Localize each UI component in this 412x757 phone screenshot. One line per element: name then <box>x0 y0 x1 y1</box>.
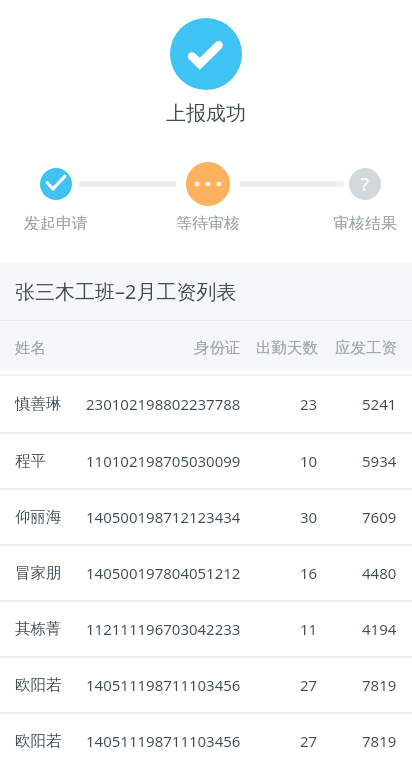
staticText: 140511198711103456 <box>86 675 241 695</box>
staticText: 欧阳若 <box>15 675 62 695</box>
staticText: 4480 <box>362 563 397 583</box>
staticText: 姓名 <box>15 338 46 358</box>
button[interactable]: 审核结果 待处理 <box>325 154 405 230</box>
staticText: 230102198802237788 <box>86 394 241 414</box>
staticText: 冒家朋 <box>15 563 62 583</box>
staticText: 27 <box>300 675 318 695</box>
staticText: 4194 <box>362 619 397 639</box>
staticText: 140511198711103456 <box>86 731 241 751</box>
staticText: 23 <box>300 394 318 414</box>
staticText: 140500197804051212 <box>86 563 241 583</box>
button[interactable]: 慎善琳 <box>0 376 412 432</box>
staticText: 上报成功 <box>166 101 246 126</box>
staticText: 140500198712123434 <box>86 507 241 527</box>
staticText: 欧阳若 <box>15 731 62 751</box>
other: 等待审核 进行中 <box>186 162 230 206</box>
staticText: 应发工资 <box>335 338 397 358</box>
staticText: 5241 <box>362 394 397 414</box>
staticText: 5934 <box>362 451 397 471</box>
staticText: 程平 <box>15 451 46 471</box>
button[interactable]: 程平 <box>0 434 412 488</box>
staticText: 慎善琳 <box>15 394 62 414</box>
button[interactable]: 等待审核 进行中 <box>168 154 248 230</box>
staticText: 7819 <box>362 731 397 751</box>
other: 发起申请 已完成 <box>40 168 72 200</box>
staticText: 审核结果 <box>325 214 405 230</box>
button[interactable]: 冒家朋 <box>0 546 412 600</box>
staticText: 110102198705030099 <box>86 451 241 471</box>
button[interactable]: 发起申请 已完成 <box>16 154 96 230</box>
button[interactable]: 欧阳若 <box>0 714 412 757</box>
staticText: 身份证 <box>194 338 241 358</box>
staticText: 其栋菁 <box>15 619 62 639</box>
staticText: 11 <box>300 619 318 639</box>
staticText: 7609 <box>362 507 397 527</box>
button[interactable]: 仰丽海 <box>0 490 412 544</box>
button[interactable]: 欧阳若 <box>0 658 412 712</box>
staticText: 张三木工班–2月工资列表 <box>15 278 237 305</box>
staticText: 等待审核 <box>168 214 248 230</box>
staticText: ? <box>361 172 369 197</box>
staticText: 仰丽海 <box>15 507 62 527</box>
staticText: 112111196703042233 <box>86 619 241 639</box>
staticText: 7819 <box>362 675 397 695</box>
staticText: 10 <box>300 451 318 471</box>
staticText: 16 <box>300 563 318 583</box>
staticText: 30 <box>300 507 318 527</box>
staticText: 出勤天数 <box>256 338 318 358</box>
staticText: 发起申请 <box>16 214 96 230</box>
other: 审核结果 待处理 <box>349 168 381 200</box>
staticText: 27 <box>300 731 318 751</box>
button[interactable]: 其栋菁 <box>0 602 412 656</box>
